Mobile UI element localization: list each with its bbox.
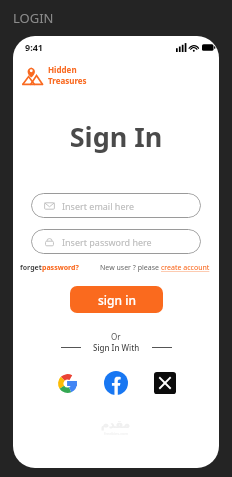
staticText: مقدم — [101, 418, 131, 431]
staticText: LOGIN — [13, 9, 54, 27]
staticText: Treasures — [48, 75, 87, 86]
staticText: Sign In — [13, 118, 219, 155]
staticText: create account — [161, 263, 210, 273]
staticText: password? — [42, 263, 79, 273]
staticText: Insert password here — [62, 236, 152, 248]
staticText: Hidden — [48, 64, 77, 75]
button[interactable]: Insert email here — [31, 193, 201, 218]
button[interactable]: Insert password here — [31, 229, 201, 254]
staticText: 9:41 — [25, 41, 43, 53]
staticText: Sign In With — [93, 342, 140, 353]
button[interactable]: New user ? please — [100, 263, 210, 273]
staticText: New user ? please — [100, 263, 161, 273]
button[interactable]: Sign in with Facebook — [103, 370, 129, 396]
button[interactable]: Sign in with Google — [54, 370, 80, 396]
staticText: freebies.com — [104, 431, 129, 436]
button[interactable]: sign in — [70, 286, 163, 313]
staticText: sign in — [98, 292, 136, 308]
staticText: Insert email here — [62, 200, 135, 212]
staticText: Or — [111, 331, 121, 342]
button[interactable]: forget — [20, 263, 79, 273]
button[interactable]: Sign in with X — [152, 370, 178, 396]
staticText: forget — [20, 263, 42, 273]
